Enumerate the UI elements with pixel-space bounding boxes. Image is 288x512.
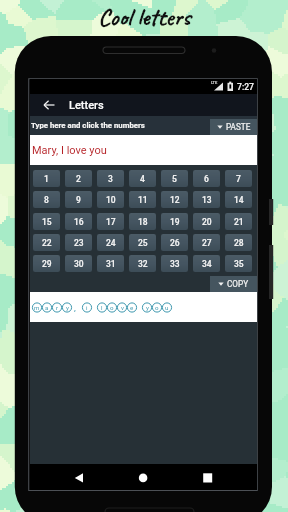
button[interactable]: 2 (65, 170, 92, 187)
button[interactable]: 15 (33, 213, 60, 230)
staticText: 2 (76, 174, 81, 184)
staticText: Mary, I love you (32, 144, 107, 157)
button[interactable]: 16 (65, 213, 92, 230)
staticText: y (146, 304, 149, 311)
staticText: 28 (234, 238, 244, 248)
button[interactable]: 25 (129, 234, 156, 251)
staticText: 12 (170, 195, 180, 205)
staticText: 6 (204, 174, 209, 184)
button[interactable]: 32 (129, 255, 156, 272)
button[interactable]: 29 (33, 255, 60, 272)
button[interactable]: 14 (225, 191, 252, 208)
button[interactable]: 10 (97, 191, 124, 208)
staticText: 18 (138, 217, 148, 227)
staticText: 34 (202, 259, 212, 269)
button[interactable]: 8 (33, 191, 60, 208)
button[interactable]: 31 (97, 255, 124, 272)
staticText: 15 (42, 217, 52, 227)
button[interactable]: 19 (161, 213, 188, 230)
staticText: o (155, 304, 159, 311)
staticText: 19 (170, 217, 180, 227)
staticText: 16 (74, 217, 84, 227)
button[interactable]: 33 (161, 255, 188, 272)
staticText: a (45, 304, 49, 311)
staticText: 23 (74, 238, 84, 248)
button[interactable]: 3 (97, 170, 124, 187)
staticText: 14 (234, 195, 244, 205)
button[interactable]: 6 (193, 170, 220, 187)
button[interactable]: 30 (65, 255, 92, 272)
staticText: 4 (140, 174, 145, 184)
button[interactable]: PASTE (210, 119, 257, 135)
staticText: 27 (202, 238, 212, 248)
button[interactable]: 17 (97, 213, 124, 230)
button[interactable]: 21 (225, 213, 252, 230)
staticText: 7 (236, 174, 241, 184)
staticText: y (66, 304, 69, 311)
staticText: 22 (42, 238, 52, 248)
button[interactable]: 28 (225, 234, 252, 251)
staticText: 26 (170, 238, 180, 248)
staticText: 21 (234, 217, 244, 227)
button[interactable]: Home (131, 464, 155, 490)
button[interactable]: 4 (129, 170, 156, 187)
staticText: Cool letters (98, 1, 191, 32)
staticText: 32 (138, 259, 148, 269)
staticText: 35 (234, 259, 244, 269)
button[interactable]: 13 (193, 191, 220, 208)
button[interactable]: 12 (161, 191, 188, 208)
button[interactable]: 9 (65, 191, 92, 208)
staticText: e (130, 304, 134, 311)
staticText: 7:27 (237, 82, 254, 92)
staticText: , (74, 303, 76, 312)
staticText: 17 (106, 217, 116, 227)
staticText: 20 (202, 217, 212, 227)
staticText: 9 (76, 195, 81, 205)
staticText: 31 (106, 259, 116, 269)
button[interactable]: 18 (129, 213, 156, 230)
staticText: PASTE (226, 122, 251, 132)
staticText: 10 (106, 195, 116, 205)
staticText: 1 (44, 174, 49, 184)
staticText: m (34, 304, 40, 311)
staticText: Type here and click the numbers (31, 121, 145, 130)
button[interactable]: 27 (193, 234, 220, 251)
button[interactable]: 34 (193, 255, 220, 272)
staticText: i (86, 304, 88, 311)
button[interactable]: 20 (193, 213, 220, 230)
button[interactable]: 35 (225, 255, 252, 272)
staticText: 33 (170, 259, 180, 269)
staticText: 29 (42, 259, 52, 269)
staticText: 11 (138, 195, 148, 205)
staticText: 5 (172, 174, 177, 184)
button[interactable]: COPY (210, 276, 257, 292)
button[interactable]: 1 (33, 170, 60, 187)
staticText: 30 (74, 259, 84, 269)
staticText: 13 (202, 195, 212, 205)
staticText: v (121, 304, 124, 311)
button[interactable]: 24 (97, 234, 124, 251)
button[interactable]: 23 (65, 234, 92, 251)
staticText: 3 (108, 174, 113, 184)
staticText: o (110, 304, 114, 311)
button[interactable]: Back (68, 464, 92, 490)
staticText: Letters (69, 99, 104, 112)
button[interactable]: 5 (161, 170, 188, 187)
staticText: 8 (44, 195, 49, 205)
staticText: l (101, 304, 103, 311)
button[interactable]: Back (36, 94, 63, 116)
button[interactable]: 7 (225, 170, 252, 187)
button[interactable]: Recent apps (195, 464, 219, 490)
staticText: COPY (227, 279, 249, 289)
staticText: r (56, 304, 59, 311)
staticText: 24 (106, 238, 116, 248)
staticText: u (165, 304, 169, 311)
button[interactable]: 22 (33, 234, 60, 251)
staticText: 25 (138, 238, 148, 248)
button[interactable]: 11 (129, 191, 156, 208)
staticText: LTE (211, 80, 218, 85)
button[interactable]: 26 (161, 234, 188, 251)
